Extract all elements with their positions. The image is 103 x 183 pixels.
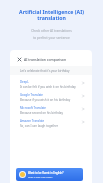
staticText: Because if you wish it on his birthday <box>20 98 71 102</box>
staticText: DeepL <box>20 80 29 84</box>
staticText: Amazon Translate <box>20 119 45 123</box>
staticText: Check other AI translations to perfect y… <box>31 29 72 40</box>
button[interactable]: Amazon Translate <box>10 114 92 127</box>
staticText: Want to be fluent in English? <box>28 171 64 175</box>
staticText: Google Translate <box>20 93 43 97</box>
staticText: Because second on his birthday <box>20 111 63 115</box>
staticText: It can be felt if you wish it on his bir… <box>20 85 76 89</box>
button[interactable]: Microsoft Translate <box>10 101 92 114</box>
button[interactable]: DeepL <box>10 75 92 88</box>
staticText: Artificial Intelligence (AI) translation <box>19 8 84 22</box>
staticText: AI translation comparison <box>24 57 67 62</box>
button[interactable]: Google Translate <box>10 88 92 101</box>
staticText: So, can I can laugh together <box>20 124 59 128</box>
button[interactable]: Want to be fluent in English? <box>16 168 83 181</box>
staticText: Let's celebrate that it's your birthday <box>20 69 70 73</box>
staticText: Start a free trial today <box>28 175 53 178</box>
staticText: Microsoft Translate <box>20 106 46 110</box>
button[interactable]: Close <box>16 56 22 62</box>
